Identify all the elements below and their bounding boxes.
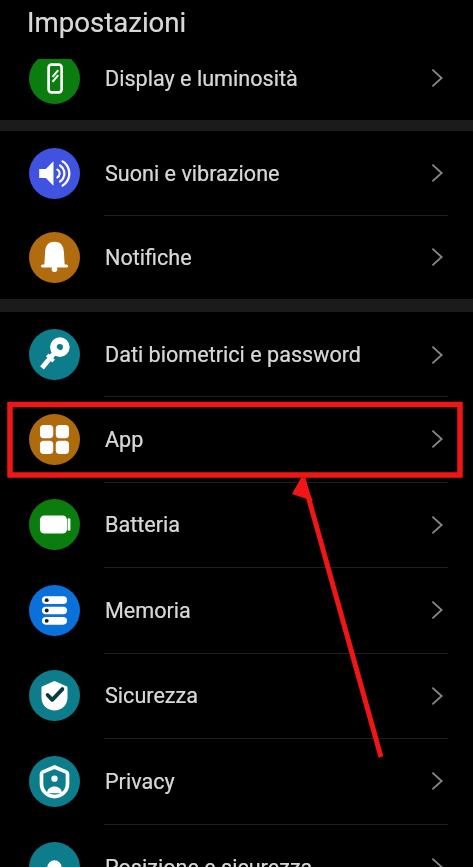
staticText: Sicurezza — [105, 683, 404, 708]
staticText: Display e luminosità — [105, 66, 404, 91]
staticText: Batteria — [105, 512, 404, 537]
button[interactable]: Display e luminosità — [0, 59, 473, 121]
button[interactable]: App — [0, 396, 473, 482]
staticText: Posizione e sicurezza — [105, 855, 404, 867]
button[interactable]: Posizione e sicurezza — [0, 824, 473, 867]
staticText: Dati biometrici e password — [105, 342, 404, 367]
button[interactable]: Memoria — [0, 567, 473, 653]
staticText: App — [105, 427, 404, 452]
staticText: Memoria — [105, 598, 404, 623]
staticText: Impostazioni — [27, 6, 187, 38]
staticText: Privacy — [105, 769, 404, 794]
button[interactable]: Suoni e vibrazione — [0, 131, 473, 215]
button[interactable]: Privacy — [0, 738, 473, 824]
staticText: Notifiche — [105, 245, 404, 270]
button[interactable]: Dati biometrici e password — [0, 312, 473, 397]
button[interactable]: Sicurezza — [0, 653, 473, 738]
button[interactable]: Batteria — [0, 482, 473, 567]
button[interactable]: Notifiche — [0, 215, 473, 299]
staticText: Suoni e vibrazione — [105, 161, 404, 186]
